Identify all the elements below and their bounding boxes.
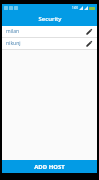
button[interactable]: nikunj [2,38,97,49]
staticText: milan [6,28,20,35]
staticText: 1:00 [72,6,78,10]
button[interactable]: ADD HOST [2,160,97,173]
button[interactable]: Edit milan [84,27,93,36]
staticText: ADD HOST [34,163,65,171]
button[interactable]: milan [2,26,97,37]
staticText: Security [38,15,62,23]
button[interactable]: Edit nikunj [84,39,93,48]
staticText: nikunj [6,40,21,47]
